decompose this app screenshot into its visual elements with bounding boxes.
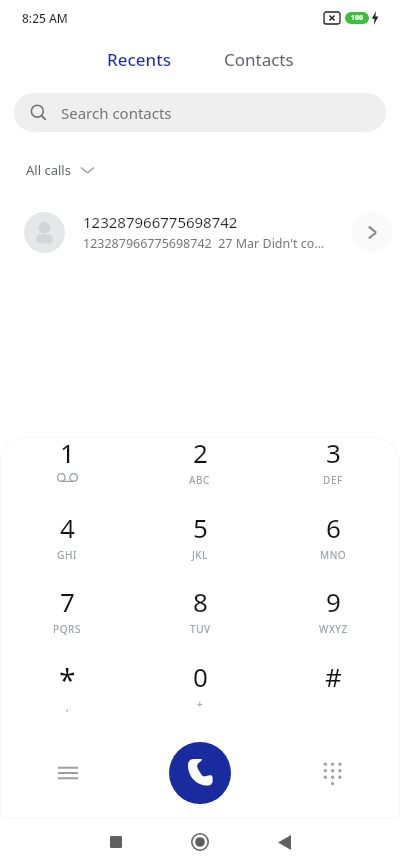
staticText: WXYZ [319,622,348,636]
button[interactable]: Recents [93,44,186,75]
staticText: * [59,659,76,700]
button[interactable]: 4 [27,510,107,572]
staticText: 8 [193,584,208,619]
staticText: 7 [60,584,75,619]
button[interactable]: # [293,659,373,721]
staticText: 5 [193,510,208,545]
button[interactable]: 0 [160,659,240,721]
staticText: 123287966775698742 27 Mar Didn't co… [83,235,325,252]
staticText: # [325,659,342,694]
button[interactable]: Call [169,742,231,804]
staticText: 6 [326,510,341,545]
staticText: 3 [326,437,341,470]
staticText: , [66,700,70,714]
staticText: MNO [320,548,347,562]
staticText: 2 [193,437,208,470]
button[interactable]: 8 [160,584,240,646]
staticText: JKL [192,548,208,562]
button[interactable]: Home [177,824,223,860]
staticText: 123287966775698742 [83,212,238,232]
button[interactable]: Dialpad [304,751,360,795]
staticText: + [197,697,204,711]
button[interactable]: 2 [160,437,240,497]
button[interactable]: 123287966775698742 [0,201,400,263]
button[interactable]: 5 [160,510,240,572]
staticText: Contacts [224,48,294,71]
staticText: 0 [193,659,208,694]
button[interactable]: 7 [27,584,107,646]
staticText: All calls [26,161,71,179]
staticText: 1 [60,437,75,470]
button[interactable]: Recent apps [93,824,139,860]
staticText: Search contacts [61,103,172,123]
staticText: DEF [323,473,343,487]
staticText: TUV [190,622,211,636]
button[interactable]: Call details [352,212,392,252]
button[interactable]: Menu [40,751,96,795]
staticText: Recents [107,48,172,71]
button[interactable]: 9 [293,584,373,646]
button[interactable]: Back [261,824,307,860]
staticText: 9 [326,584,341,619]
staticText: 8:25 AM [22,10,68,26]
button[interactable]: All calls [18,157,102,183]
button[interactable]: 6 [293,510,373,572]
staticText: ABC [189,473,211,487]
staticText: PQRS [53,622,81,636]
button[interactable]: Contacts [210,44,308,75]
button[interactable]: * [27,659,107,721]
button[interactable]: 3 [293,437,373,497]
button[interactable]: Search contacts [14,93,386,132]
button[interactable]: 1 [27,437,107,497]
staticText: GHI [57,548,77,562]
staticText: 4 [60,510,75,545]
staticText: 100 [351,13,364,23]
